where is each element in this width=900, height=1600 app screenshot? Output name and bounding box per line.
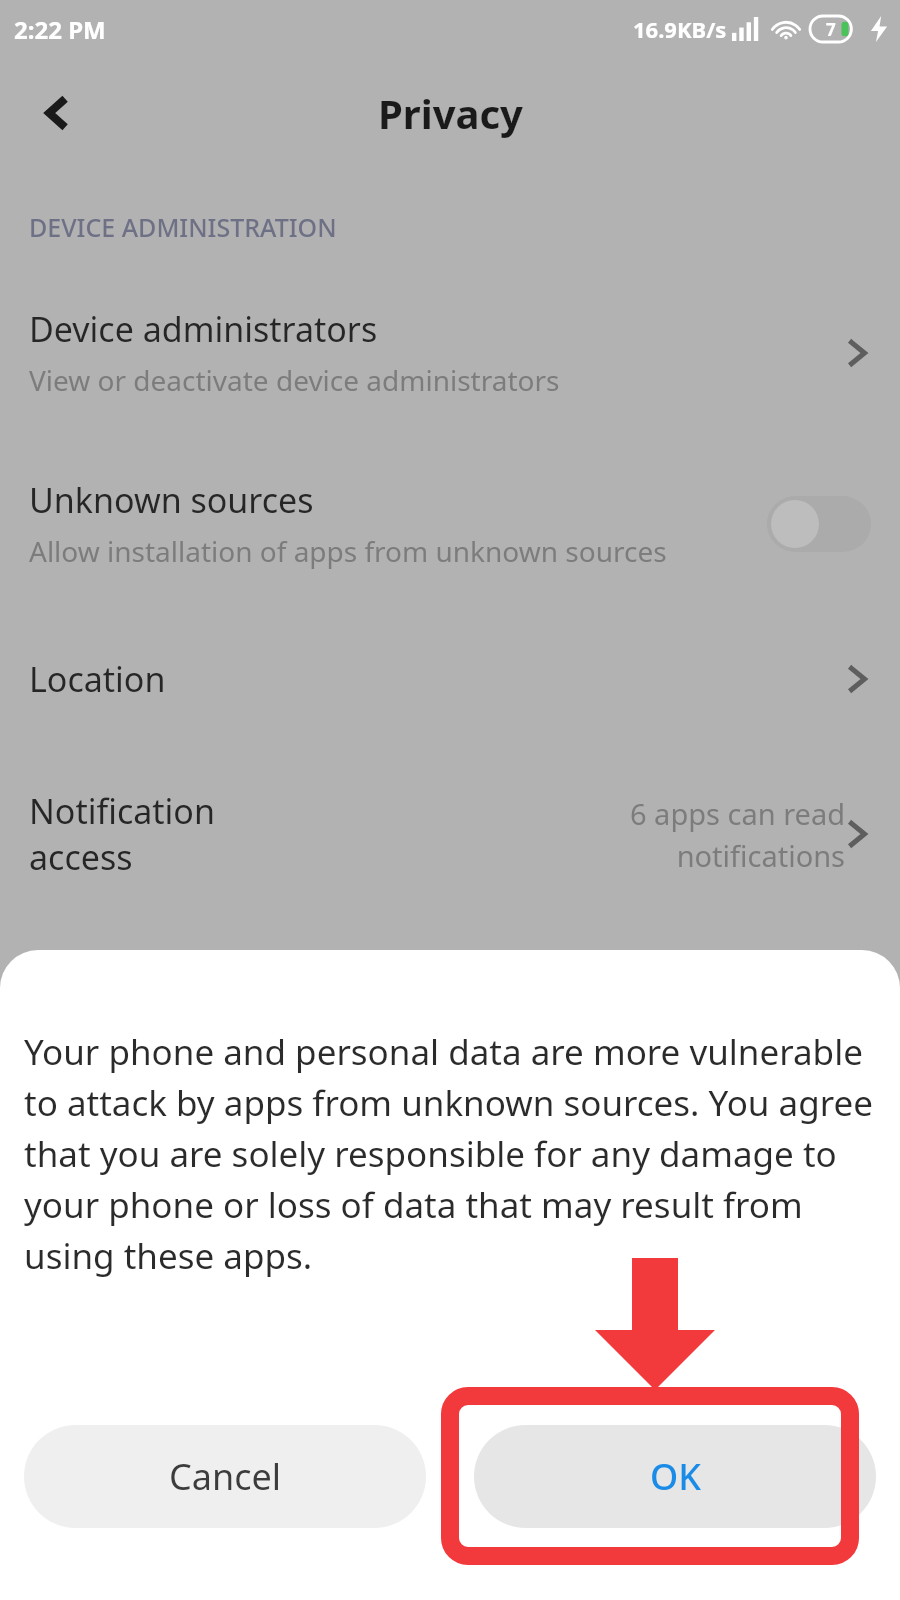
staticText: Device administrators bbox=[29, 306, 378, 352]
button[interactable]: Unknown sources toggle bbox=[767, 496, 871, 552]
staticText: Unknown sources bbox=[29, 477, 314, 523]
button[interactable]: Back bbox=[24, 81, 88, 145]
staticText: Notification access bbox=[29, 788, 279, 880]
staticText: Location bbox=[29, 656, 845, 702]
staticText: DEVICE ADMINISTRATION bbox=[29, 210, 337, 244]
staticText: Your phone and personal data are more vu… bbox=[24, 1028, 876, 1279]
button[interactable]: Device administrators bbox=[0, 306, 900, 399]
staticText: OK bbox=[650, 1452, 701, 1501]
staticText: View or deactivate device administrators bbox=[29, 361, 560, 399]
button[interactable]: OK bbox=[474, 1425, 876, 1528]
button[interactable]: Notification access bbox=[0, 788, 900, 880]
staticText: Allow installation of apps from unknown … bbox=[29, 532, 667, 570]
staticText: 7 bbox=[826, 18, 836, 41]
staticText: 16.9KB/s bbox=[633, 14, 727, 44]
button[interactable]: Location bbox=[0, 656, 900, 702]
button[interactable]: Unknown sources bbox=[0, 477, 900, 570]
staticText: Privacy bbox=[378, 86, 523, 140]
staticText: 2:22 PM bbox=[14, 13, 106, 46]
staticText: 6 apps can read notifications bbox=[545, 794, 845, 875]
button[interactable]: Cancel bbox=[24, 1425, 426, 1528]
staticText: Cancel bbox=[169, 1452, 282, 1501]
